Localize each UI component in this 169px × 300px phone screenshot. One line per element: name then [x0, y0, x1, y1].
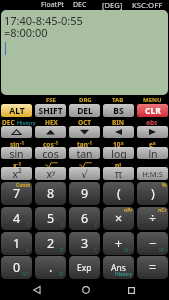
staticText: HEX — [45, 118, 58, 125]
button[interactable]: log — [103, 147, 134, 159]
staticText: x² — [12, 167, 22, 180]
button[interactable]: sin — [1, 147, 32, 159]
button[interactable]: π — [103, 167, 134, 180]
button[interactable]: Home — [78, 282, 94, 298]
staticText: M- — [159, 247, 166, 254]
staticText: 1 — [13, 235, 21, 252]
button[interactable]: BS — [103, 104, 134, 117]
button[interactable]: ALT — [1, 104, 32, 117]
button[interactable]: 5 — [35, 207, 66, 230]
button[interactable]: xʸ — [35, 167, 66, 180]
staticText: E — [61, 222, 64, 229]
button[interactable]: DEL — [69, 104, 100, 117]
button[interactable]: . — [35, 256, 66, 279]
staticText: 0 — [13, 259, 21, 276]
button[interactable]: Up — [1, 126, 32, 138]
staticText: % — [162, 182, 167, 189]
button[interactable]: Ans — [103, 256, 134, 279]
button[interactable]: 7 — [1, 182, 32, 205]
staticText: 3 — [81, 235, 89, 252]
button[interactable]: − — [137, 232, 168, 255]
button[interactable]: + — [103, 232, 134, 255]
staticText: ) — [151, 185, 155, 202]
staticText: ln — [148, 147, 158, 159]
button[interactable]: ln — [137, 147, 168, 159]
button[interactable]: Left — [103, 126, 134, 138]
staticText: log — [111, 147, 127, 159]
staticText: Exp — [77, 262, 92, 274]
button[interactable]: 2 — [35, 232, 66, 255]
button[interactable]: Right — [137, 126, 168, 138]
staticText: History — [115, 271, 132, 278]
staticText: 4 — [13, 210, 21, 227]
staticText: 7 — [13, 185, 21, 202]
button[interactable]: ( — [103, 182, 134, 205]
button[interactable]: SHIFT — [35, 104, 66, 117]
staticText: cos — [42, 147, 59, 159]
button[interactable]: Recents — [123, 282, 139, 298]
button[interactable]: 1 — [1, 232, 32, 255]
button[interactable]: tan — [69, 147, 100, 159]
staticText: C — [94, 247, 98, 254]
staticText: nPr — [124, 207, 133, 214]
staticText: BIN — [112, 118, 125, 125]
staticText: π — [115, 167, 122, 180]
button[interactable]: cos — [35, 147, 66, 159]
staticText: tan — [76, 147, 93, 159]
staticText: CLR — [145, 105, 161, 117]
staticText: n! — [115, 161, 122, 168]
button[interactable]: 3 — [69, 232, 100, 255]
staticText: 8 — [47, 185, 55, 202]
staticText: -1 — [54, 140, 59, 146]
button[interactable]: = — [137, 256, 168, 279]
staticText: tan — [77, 140, 88, 147]
staticText: sin — [10, 140, 20, 147]
staticText: A — [26, 247, 30, 254]
staticText: xʸ — [46, 167, 56, 180]
staticText: x — [13, 161, 17, 168]
staticText: sin — [9, 147, 24, 159]
staticText: cos — [43, 140, 54, 147]
staticText: M — [59, 271, 64, 278]
staticText: e — [149, 140, 153, 147]
staticText: × — [115, 210, 123, 227]
staticText: TAB — [112, 96, 124, 103]
staticText: =8:00:00 — [4, 25, 48, 40]
staticText: ALT — [9, 105, 25, 117]
staticText: 2 — [47, 235, 55, 252]
staticText: DEC — [2, 118, 15, 127]
staticText: ( — [117, 185, 121, 202]
button[interactable]: H:M:S — [137, 167, 168, 180]
button[interactable]: x² — [1, 167, 32, 180]
staticText: 10 — [113, 140, 121, 147]
button[interactable]: 6 — [69, 207, 100, 230]
staticText: 6 — [81, 210, 89, 227]
staticText: 5 — [47, 210, 55, 227]
staticText: . — [49, 259, 53, 276]
staticText: ÷ — [149, 210, 157, 227]
button[interactable]: Back — [29, 282, 45, 298]
button[interactable]: Up — [35, 126, 66, 138]
button[interactable]: 8 — [35, 182, 66, 205]
staticText: Ans — [111, 262, 126, 274]
button[interactable]: Down — [69, 126, 100, 138]
staticText: + — [115, 235, 123, 252]
button[interactable]: ) — [137, 182, 168, 205]
staticText: FSE — [46, 96, 56, 103]
staticText: DEL — [77, 105, 93, 117]
button[interactable]: × — [103, 207, 134, 230]
button[interactable]: CLR — [137, 104, 168, 117]
button[interactable]: Exp — [69, 256, 100, 279]
button[interactable]: ÷ — [137, 207, 168, 230]
staticText: F — [95, 222, 98, 229]
staticText: x — [153, 140, 156, 146]
staticText: nCr — [158, 207, 167, 214]
staticText: √ — [81, 168, 88, 180]
staticText: = — [149, 259, 157, 276]
staticText: -1 — [17, 161, 22, 167]
button[interactable]: 0 — [1, 256, 32, 279]
button[interactable]: √ — [69, 167, 100, 180]
button[interactable]: 4 — [1, 207, 32, 230]
staticText: M+ — [124, 247, 132, 254]
button[interactable]: 9 — [69, 182, 100, 205]
